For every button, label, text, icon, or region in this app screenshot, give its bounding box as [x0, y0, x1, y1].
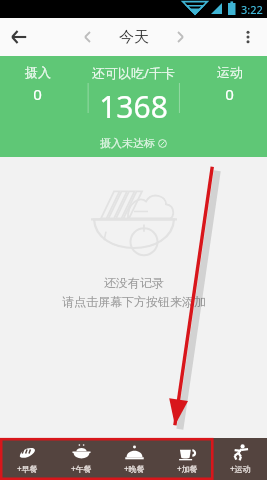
button[interactable]: +加餐: [161, 438, 214, 480]
staticText: 0: [33, 84, 42, 104]
button[interactable]: More options: [229, 18, 267, 56]
button[interactable]: +晚餐: [108, 438, 161, 480]
staticText: 摄入: [25, 64, 51, 80]
button[interactable]: +早餐: [0, 438, 54, 480]
staticText: +加餐: [177, 463, 198, 474]
button[interactable]: 还可以吃/千卡: [75, 64, 192, 127]
staticText: +早餐: [17, 463, 38, 474]
button[interactable]: 运动: [192, 64, 267, 104]
staticText: +运动: [230, 463, 251, 474]
staticText: 1368: [99, 86, 168, 127]
staticText: +晚餐: [124, 463, 145, 474]
button[interactable]: +运动: [214, 438, 267, 480]
button[interactable]: Next day: [163, 20, 197, 54]
staticText: 摄入未达标: [100, 136, 155, 150]
staticText: 请点击屏幕下方按钮来添加: [62, 294, 206, 309]
staticText: 3:22: [241, 2, 263, 17]
button[interactable]: Previous day: [71, 20, 105, 54]
button[interactable]: 摄入: [0, 64, 75, 104]
staticText: +午餐: [71, 463, 92, 474]
button[interactable]: 今天: [119, 28, 149, 47]
staticText: 还没有记录: [104, 275, 164, 290]
staticText: 运动: [217, 64, 243, 80]
button[interactable]: +午餐: [54, 438, 108, 480]
staticText: 还可以吃/千卡: [92, 64, 175, 82]
staticText: 0: [225, 84, 234, 104]
button[interactable]: Back: [0, 18, 38, 56]
button[interactable]: 摄入未达标: [0, 136, 267, 150]
